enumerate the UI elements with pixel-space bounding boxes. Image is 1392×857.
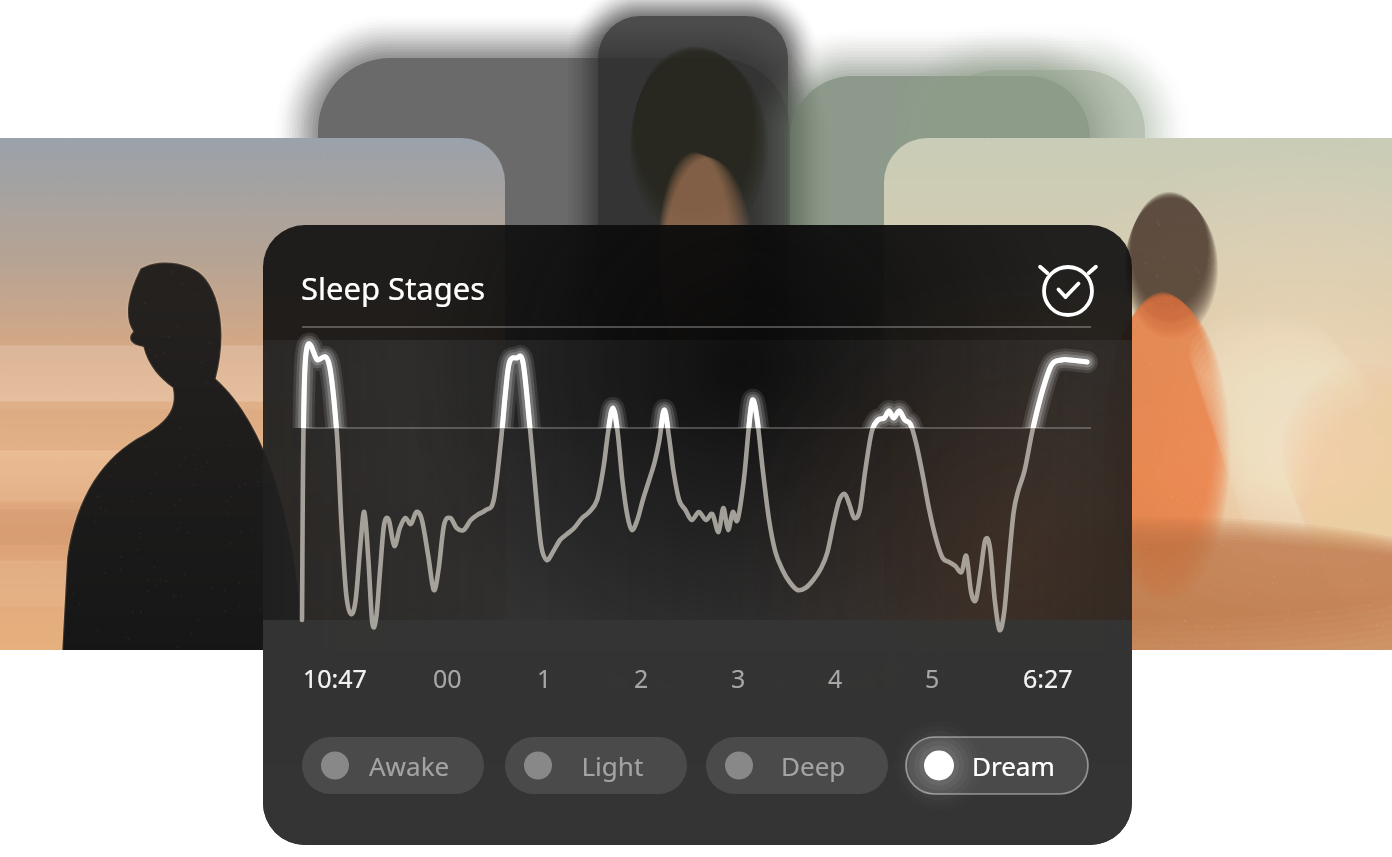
button[interactable]: Light [505, 737, 687, 794]
button[interactable]: Dream [906, 737, 1088, 794]
button[interactable]: Sleep Stages chart [263, 225, 1132, 845]
button[interactable]: Awake [302, 737, 484, 794]
button[interactable]: Alarm [1040, 263, 1098, 321]
button[interactable]: Deep [706, 737, 888, 794]
